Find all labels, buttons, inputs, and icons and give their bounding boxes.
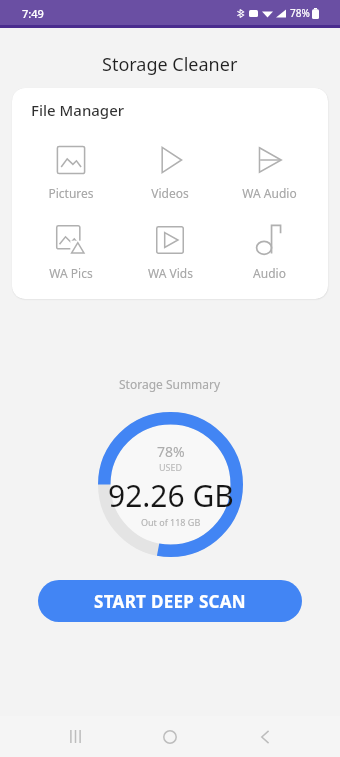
staticText: 78% — [157, 442, 185, 461]
staticText: Videos — [151, 185, 189, 201]
button[interactable]: WA Pics — [22, 223, 120, 281]
staticText: Storage Cleaner — [102, 52, 238, 77]
staticText: 78% — [290, 6, 310, 20]
staticText: START DEEP SCAN — [94, 590, 246, 613]
staticText: WA Audio — [242, 185, 297, 201]
button[interactable]: Back — [242, 716, 288, 757]
button[interactable]: START DEEP SCAN — [38, 580, 302, 622]
staticText: 7:49 — [22, 6, 44, 21]
button[interactable]: Audio — [220, 223, 318, 281]
button[interactable]: WA Audio — [220, 143, 318, 201]
button[interactable]: Videos — [121, 143, 219, 201]
button[interactable]: Recent apps — [52, 716, 98, 757]
staticText: Audio — [253, 265, 286, 281]
staticText: USED — [159, 461, 183, 473]
staticText: File Manager — [31, 100, 125, 120]
button[interactable]: Pictures — [22, 143, 120, 201]
staticText: 92.26 GB — [108, 475, 234, 516]
staticText: WA Vids — [148, 265, 193, 281]
button[interactable]: Home — [147, 716, 193, 757]
staticText: Pictures — [48, 185, 94, 201]
staticText: Out of 118 GB — [141, 516, 201, 528]
staticText: Storage Summary — [119, 376, 221, 392]
button[interactable]: WA Vids — [121, 223, 219, 281]
staticText: WA Pics — [49, 265, 93, 281]
